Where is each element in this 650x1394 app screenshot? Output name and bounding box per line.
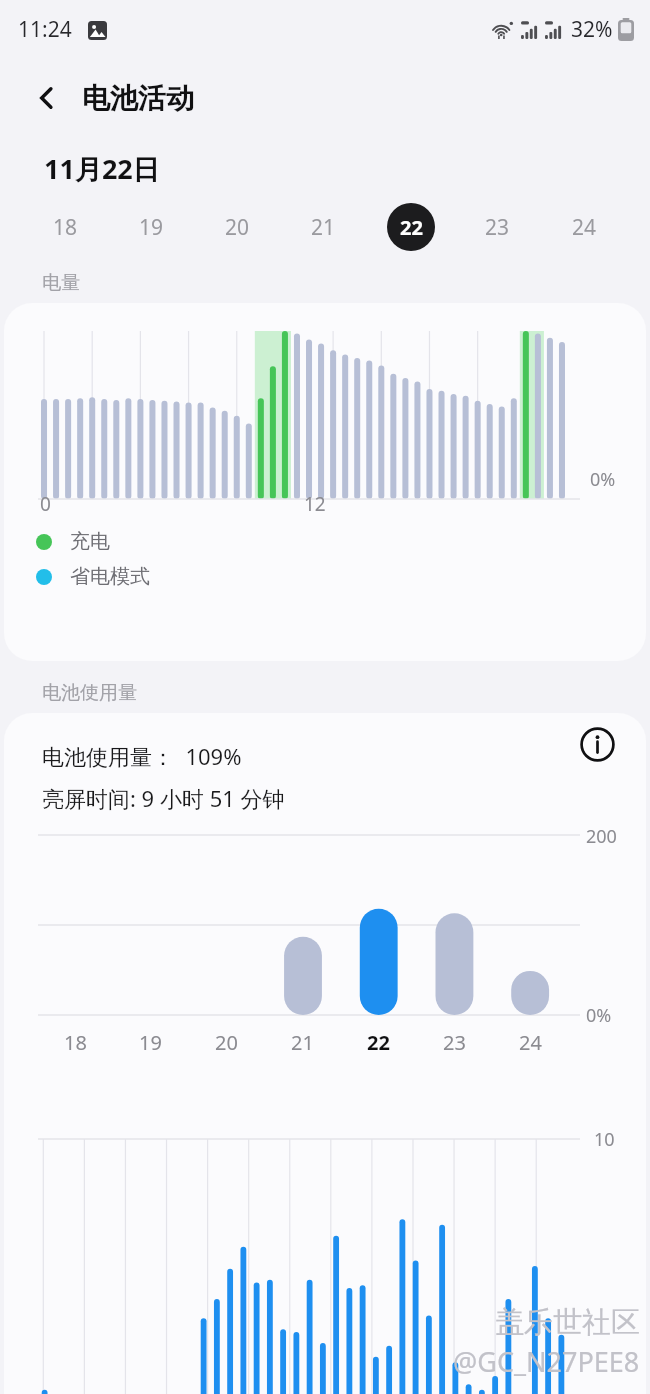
- staticText: 10: [594, 1127, 615, 1152]
- button[interactable]: 充电: [36, 529, 110, 554]
- staticText: 24: [572, 213, 597, 242]
- staticText: 盖乐世社区: [495, 1304, 640, 1341]
- staticText: 0%: [590, 467, 616, 492]
- staticText: 19: [139, 1029, 162, 1056]
- staticText: 充电: [70, 529, 110, 554]
- button[interactable]: 0%: [4, 303, 646, 661]
- staticText: 19: [139, 213, 164, 242]
- staticText: 23: [485, 213, 510, 242]
- staticText: 省电模式: [70, 564, 150, 589]
- staticText: 0: [40, 491, 51, 517]
- staticText: 20: [225, 213, 250, 242]
- button[interactable]: 19: [108, 199, 194, 255]
- button[interactable]: Information: [572, 719, 622, 769]
- button[interactable]: 20: [194, 199, 280, 255]
- staticText: 12: [304, 491, 326, 517]
- button[interactable]: 24: [541, 199, 628, 255]
- staticText: 0%: [586, 1003, 612, 1028]
- staticText: 电池使用量: [42, 681, 137, 705]
- staticText: 亮屏时间: 9 小时 51 分钟: [42, 783, 285, 813]
- staticText: 11月22日: [44, 150, 160, 187]
- staticText: 32%: [571, 15, 613, 44]
- button[interactable]: 23: [454, 199, 541, 255]
- staticText: 22: [367, 1029, 390, 1056]
- staticText: 电量: [42, 271, 80, 295]
- staticText: 22: [400, 214, 423, 241]
- button[interactable]: 省电模式: [36, 564, 150, 589]
- staticText: 21: [311, 213, 336, 242]
- staticText: @GC_N27PEE8: [453, 1343, 640, 1380]
- staticText: 200: [586, 824, 617, 849]
- staticText: 23: [443, 1029, 466, 1056]
- staticText: 21: [291, 1029, 314, 1056]
- staticText: 电池使用量： 109%: [42, 741, 242, 771]
- button[interactable]: 22: [367, 199, 454, 255]
- button[interactable]: Back: [22, 73, 72, 123]
- staticText: 电池活动: [82, 81, 194, 116]
- staticText: 24: [519, 1029, 542, 1056]
- button[interactable]: 18: [22, 199, 108, 255]
- staticText: 18: [64, 1029, 87, 1056]
- staticText: 18: [53, 213, 78, 242]
- staticText: 20: [215, 1029, 238, 1056]
- button[interactable]: 21: [280, 199, 367, 255]
- staticText: 11:24: [18, 15, 72, 44]
